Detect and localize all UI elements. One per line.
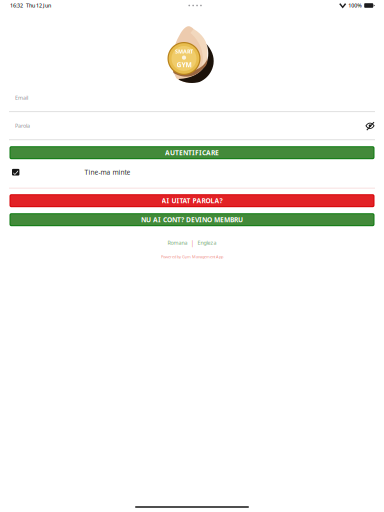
button[interactable]: AUTENTIFICARE [9, 146, 374, 159]
staticText: Romana [167, 239, 187, 246]
staticText: SMART [175, 48, 193, 55]
staticText: AI UITAT PAROLA? [161, 196, 222, 205]
button[interactable]: Romana [167, 239, 187, 246]
staticText: | [190, 238, 194, 247]
staticText: Powered by Gym Management App [161, 254, 223, 259]
staticText: NU AI CONT? DEVINO MEMBRU [141, 215, 243, 224]
staticText: Email [15, 94, 28, 101]
staticText: AUTENTIFICARE [165, 148, 219, 157]
staticText: NU AI CONT? DEVINO MEMBRU [141, 215, 243, 224]
button[interactable]: NU AI CONT? DEVINO MEMBRU [9, 213, 374, 226]
staticText: Parola [15, 122, 30, 129]
staticText: 100% [348, 2, 362, 9]
button[interactable]: Tine-ma minte [0, 168, 384, 176]
button[interactable]: Show password [365, 121, 375, 130]
staticText: 16:32 Thu 12 Jun [10, 2, 51, 9]
staticText: Engleza [197, 239, 216, 246]
button[interactable]: AI UITAT PAROLA? [9, 194, 374, 207]
staticText: AUTENTIFICARE [165, 148, 219, 157]
staticText: Tine-ma minte [84, 168, 130, 177]
staticText: AI UITAT PAROLA? [161, 196, 222, 205]
staticText: GYM [176, 60, 191, 69]
button[interactable]: Engleza [197, 239, 216, 246]
